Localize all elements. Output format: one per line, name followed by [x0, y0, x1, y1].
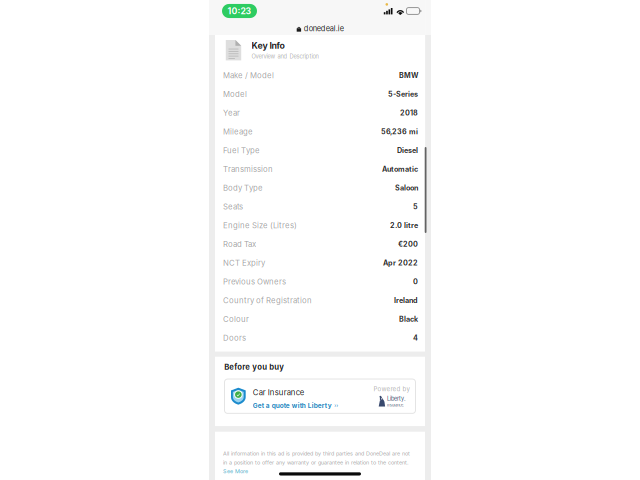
staticText: Year	[223, 108, 240, 118]
staticText: Car Insurance	[253, 388, 305, 397]
staticText: Transmission	[223, 164, 273, 174]
staticText: Engine Size (Litres)	[223, 221, 297, 230]
button[interactable]: Car Insurance	[224, 379, 415, 413]
staticText: 0	[413, 277, 418, 286]
staticText: 5	[413, 202, 418, 211]
staticText: Apr 2022	[383, 258, 418, 267]
staticText: Body Type	[223, 183, 263, 193]
staticText: Make / Model	[223, 71, 274, 80]
staticText: ››	[334, 402, 338, 409]
staticText: NCT Expiry	[223, 258, 265, 268]
button[interactable]: See More	[223, 468, 248, 475]
staticText: Fuel Type	[223, 146, 260, 155]
staticText: Overview and Description	[252, 53, 319, 60]
staticText: 10:23	[227, 6, 251, 16]
staticText: Black	[399, 315, 418, 323]
staticText: Doors	[223, 333, 246, 343]
staticText: Diesel	[397, 146, 418, 155]
staticText: BMW	[399, 71, 418, 80]
staticText: Seats	[223, 202, 243, 211]
staticText: Model	[223, 89, 247, 99]
staticText: Insurance.	[387, 403, 404, 407]
staticText: Country of Registration	[223, 296, 312, 305]
staticText: 5-Series	[388, 90, 418, 98]
staticText: Key Info	[252, 40, 285, 51]
staticText: Mileage	[223, 127, 253, 136]
staticText: in a position to offer any warranty or g…	[223, 459, 409, 466]
staticText: Saloon	[395, 183, 418, 192]
staticText: Automatic	[382, 165, 418, 173]
staticText: Liberty.	[387, 395, 406, 402]
staticText: €200	[398, 240, 418, 248]
staticText: Ireland	[394, 296, 418, 305]
staticText: 4	[413, 333, 418, 342]
staticText: Colour	[223, 314, 249, 324]
staticText: Road Tax	[223, 239, 256, 249]
staticText: All information in this ad is provided b…	[223, 450, 410, 457]
staticText: See More	[223, 468, 248, 475]
staticText: donedeal.ie	[304, 24, 344, 33]
staticText: 56,236 mi	[381, 127, 418, 136]
staticText: Previous Owners	[223, 277, 286, 286]
staticText: Get a quote with Liberty	[253, 402, 332, 409]
staticText: Before you buy	[224, 362, 284, 372]
staticText: 2018	[400, 108, 418, 117]
staticText: Powered by	[373, 385, 409, 393]
staticText: 2.0 litre	[390, 221, 418, 230]
